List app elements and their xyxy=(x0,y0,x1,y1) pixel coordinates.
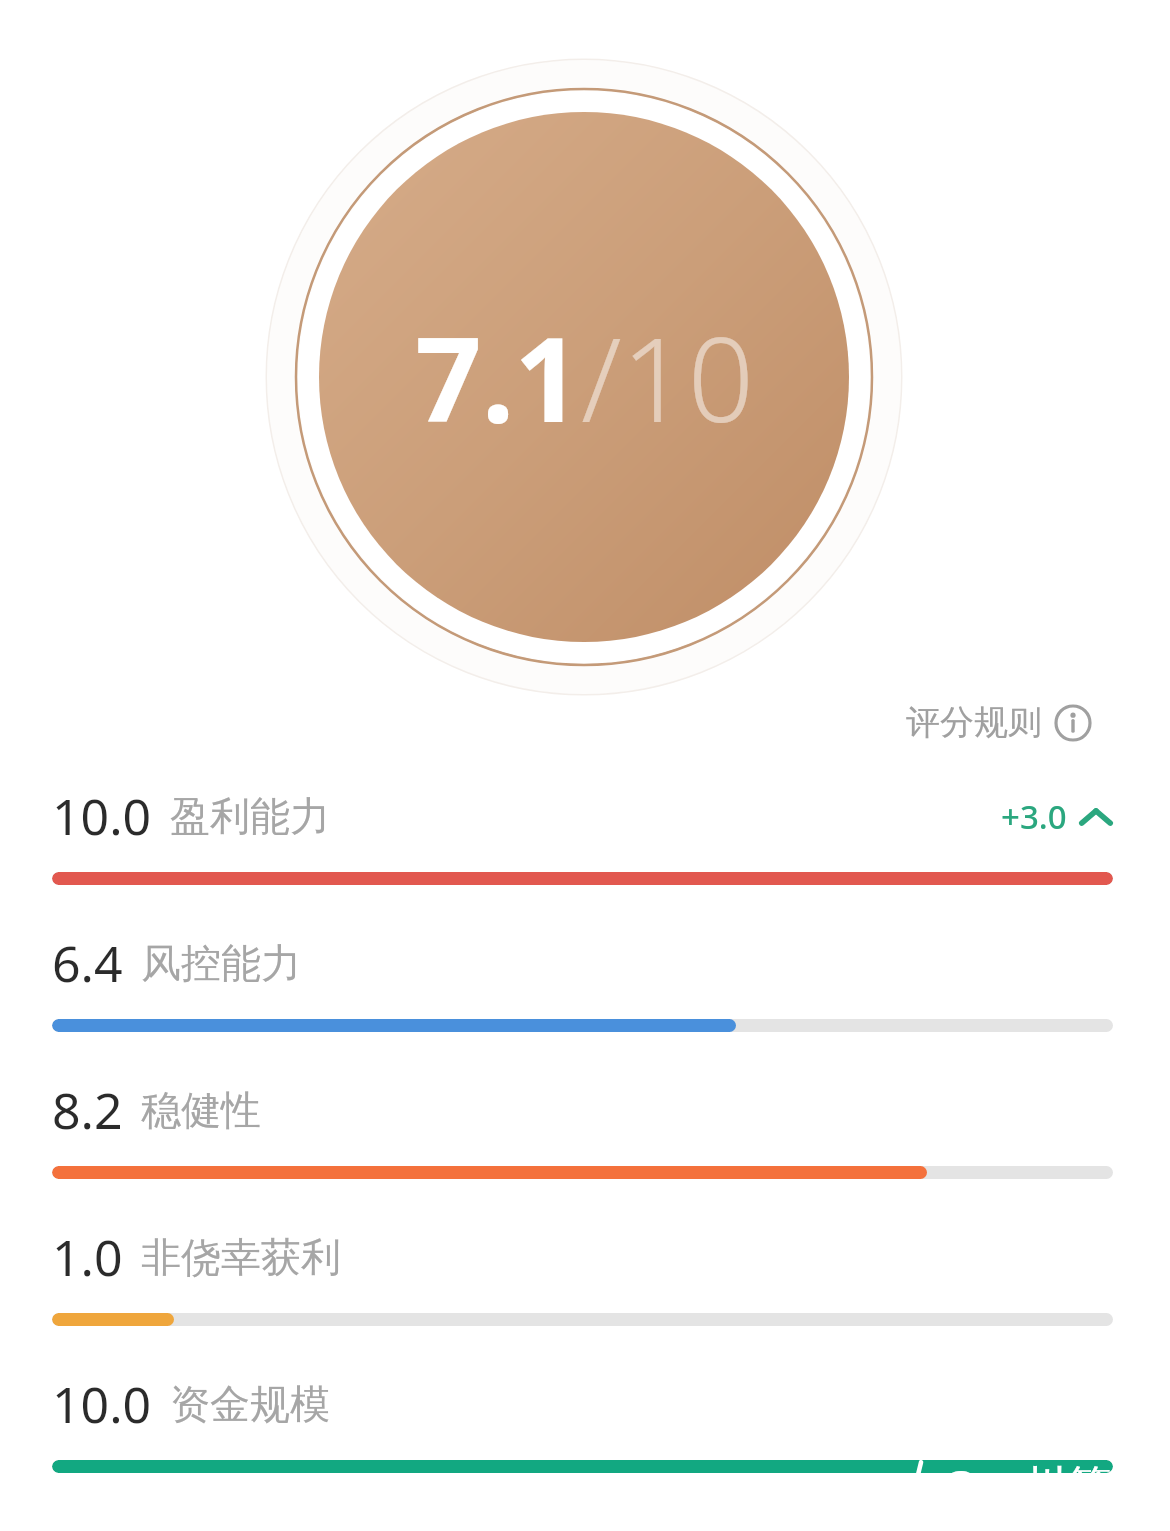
staticText: 稳健性 xyxy=(141,1085,261,1135)
staticText: 10.0 xyxy=(52,1370,152,1438)
button[interactable]: 10.0 xyxy=(0,782,1170,885)
staticText: 非侥幸获利 xyxy=(141,1232,341,1282)
staticText: 1.0 xyxy=(52,1223,123,1291)
staticText: 风控能力 xyxy=(141,938,301,988)
staticText: /10 xyxy=(581,298,754,456)
button[interactable]: 6.4 xyxy=(0,929,1170,1032)
staticText: 7.1 xyxy=(415,298,581,456)
staticText: @一川策略 xyxy=(940,1455,1156,1515)
button[interactable]: 综合评分 7.1 / 10 xyxy=(264,57,904,697)
button[interactable]: 10.0 xyxy=(0,1370,1170,1473)
button[interactable]: 评分规则 xyxy=(900,697,1098,748)
button[interactable]: 8.2 xyxy=(0,1076,1170,1179)
other: 上升 xyxy=(1079,806,1113,828)
other: 评分规则说明 xyxy=(1054,704,1092,742)
staticText: +3.0 xyxy=(1001,794,1067,839)
button[interactable]: 1.0 xyxy=(0,1223,1170,1326)
staticText: 评分规则 xyxy=(906,701,1042,744)
staticText: 10.0 xyxy=(52,782,152,850)
staticText: 盈利能力 xyxy=(170,791,330,841)
staticText: 资金规模 xyxy=(170,1379,330,1429)
staticText: 6.4 xyxy=(52,929,123,997)
staticText: 8.2 xyxy=(52,1076,123,1144)
